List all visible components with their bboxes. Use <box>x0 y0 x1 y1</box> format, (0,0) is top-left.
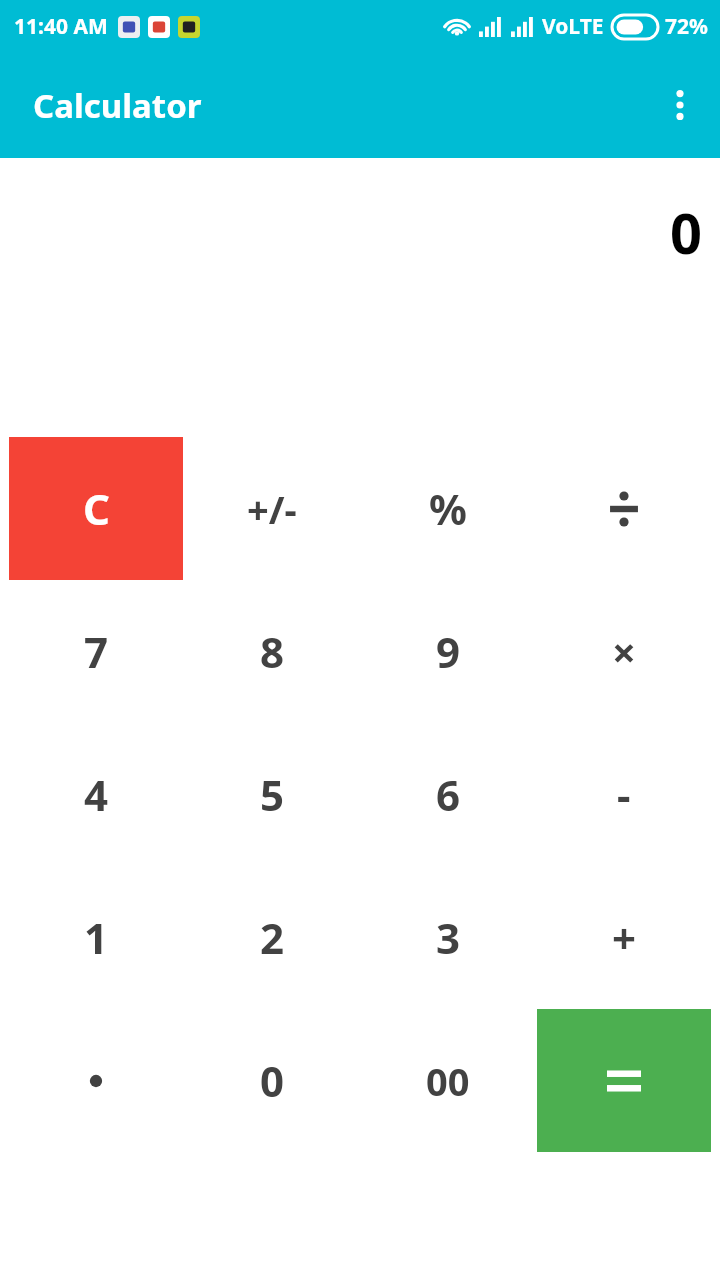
staticText: 3 <box>436 909 461 966</box>
button[interactable]: 6 <box>361 723 535 866</box>
staticText: % <box>429 480 467 537</box>
staticText: × <box>612 623 637 680</box>
staticText: + <box>612 909 637 966</box>
button[interactable]: 2 <box>185 866 359 1009</box>
staticText: 2 <box>260 909 285 966</box>
button[interactable]: 1 <box>9 866 183 1009</box>
staticText: 9 <box>436 623 461 680</box>
button[interactable]: 00 <box>361 1009 535 1152</box>
button[interactable]: +/- <box>185 437 359 580</box>
staticText: 1 <box>84 909 109 966</box>
button[interactable]: More options <box>652 77 708 133</box>
staticText: 5 <box>260 766 285 823</box>
staticText: - <box>617 766 631 823</box>
button[interactable] <box>537 1009 711 1152</box>
button[interactable]: 4 <box>9 723 183 866</box>
staticText: +/- <box>247 483 297 535</box>
staticText: 4 <box>84 766 109 823</box>
staticText: 72% <box>665 12 708 41</box>
staticText: 00 <box>426 1055 470 1107</box>
button[interactable]: + <box>537 866 711 1009</box>
staticText: 7 <box>84 623 109 680</box>
staticText: 11:40 AM <box>14 12 108 41</box>
button[interactable]: 7 <box>9 580 183 723</box>
button[interactable]: 5 <box>185 723 359 866</box>
button[interactable] <box>537 437 711 580</box>
button[interactable]: 8 <box>185 580 359 723</box>
staticText: 0 <box>669 194 702 270</box>
button[interactable]: × <box>537 580 711 723</box>
button[interactable]: C <box>9 437 183 580</box>
staticText: 6 <box>436 766 461 823</box>
button[interactable] <box>9 1009 183 1152</box>
staticText: 0 <box>260 1052 285 1109</box>
button[interactable]: 0 <box>185 1009 359 1152</box>
staticText: Calculator <box>33 83 202 128</box>
button[interactable]: 9 <box>361 580 535 723</box>
staticText: VoLTE <box>542 12 604 41</box>
button[interactable]: - <box>537 723 711 866</box>
button[interactable]: % <box>361 437 535 580</box>
button[interactable]: 3 <box>361 866 535 1009</box>
staticText: C <box>83 480 110 537</box>
staticText: 8 <box>260 623 285 680</box>
